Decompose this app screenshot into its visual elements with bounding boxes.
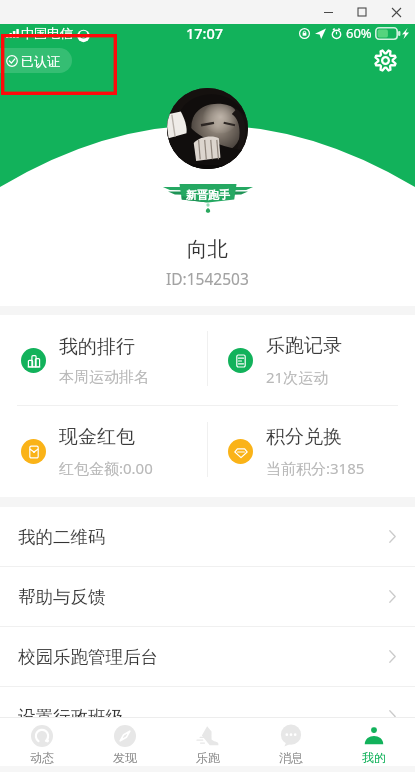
button[interactable]: 帮助与反馈 [0, 567, 415, 626]
button[interactable]: 我的 [332, 718, 415, 766]
button[interactable]: 动态 [0, 718, 83, 766]
button[interactable]: 乐跑 [166, 718, 249, 766]
button[interactable]: Settings [367, 42, 403, 78]
staticText: 乐跑 [196, 750, 220, 765]
staticText: 新晋跑手 [186, 188, 230, 202]
staticText: 21次运动 [266, 367, 329, 387]
staticText: 帮助与反馈 [18, 586, 106, 608]
staticText: 动态 [30, 750, 54, 765]
staticText: 向北 [187, 236, 228, 262]
staticText: 当前积分:3185 [266, 458, 365, 478]
staticText: 本周运动排名 [59, 368, 149, 387]
button[interactable]: 积分兑换 [207, 406, 415, 497]
button[interactable]: 校园乐跑管理后台 [0, 627, 415, 686]
staticText: 校园乐跑管理后台 [18, 646, 158, 668]
button[interactable]: 乐跑记录 [207, 315, 415, 406]
staticText: 积分兑换 [266, 425, 342, 449]
button[interactable]: 已认证 [0, 48, 72, 73]
button[interactable]: 消息 [249, 718, 332, 766]
staticText: 已认证 [21, 53, 60, 69]
staticText: 我的 [362, 750, 386, 765]
button[interactable]: 设置行政班级 [0, 687, 415, 746]
staticText: ID:1542503 [166, 268, 249, 289]
staticText: 我的排行 [59, 335, 135, 359]
button[interactable]: 我的排行 [0, 315, 207, 406]
staticText: 发现 [113, 750, 137, 765]
staticText: 红包金额:0.00 [59, 458, 153, 478]
button[interactable]: 我的二维码 [0, 507, 415, 566]
button[interactable]: 现金红包 [0, 406, 207, 497]
staticText: 设置行政班级 [18, 706, 123, 728]
staticText: 中国电信 [21, 25, 73, 41]
staticText: 乐跑记录 [266, 334, 342, 358]
staticText: 消息 [279, 750, 303, 765]
button[interactable]: 发现 [83, 718, 166, 766]
staticText: 我的二维码 [18, 526, 106, 548]
staticText: 现金红包 [59, 425, 135, 449]
staticText: 17:07 [186, 23, 224, 43]
staticText: 60% [346, 24, 372, 42]
